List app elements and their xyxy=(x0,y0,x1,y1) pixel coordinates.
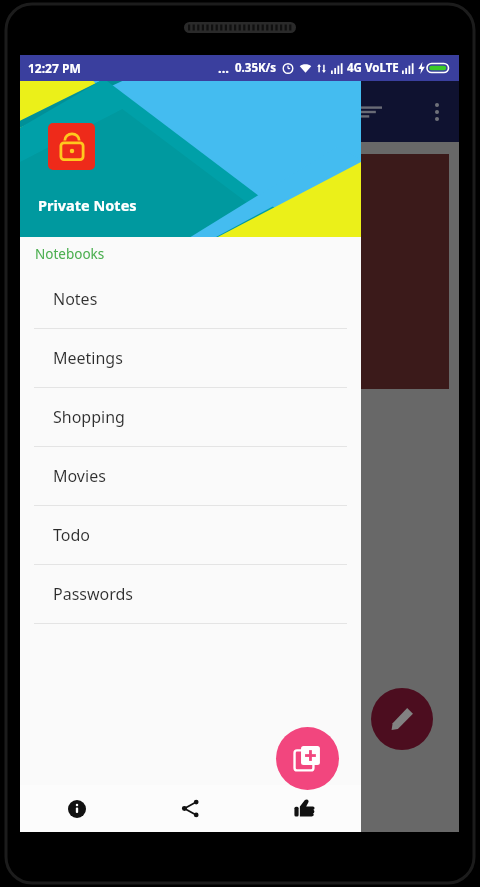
button[interactable]: More options xyxy=(429,97,445,127)
staticText: Meetings xyxy=(53,347,123,369)
button[interactable]: Todo xyxy=(20,506,361,565)
staticText: ... xyxy=(218,59,229,77)
other: Sort xyxy=(360,101,382,123)
staticText: Movies xyxy=(53,465,106,487)
button[interactable]: Notes xyxy=(20,270,361,329)
button[interactable]: Compose note xyxy=(371,688,433,750)
button[interactable]: Shopping xyxy=(20,388,361,447)
staticText: Passwords xyxy=(53,583,134,605)
button[interactable]: Movies xyxy=(20,447,361,506)
staticText: Shopping xyxy=(53,406,125,428)
staticText: 12:27 PM xyxy=(28,60,81,76)
button[interactable]: Like xyxy=(247,785,361,832)
staticText: Notes xyxy=(53,288,98,310)
staticText: 4G xyxy=(347,60,362,76)
staticText: 12:09:40 PM xyxy=(32,366,113,385)
button[interactable]: Share xyxy=(133,785,247,832)
staticText: Notebooks xyxy=(35,245,105,263)
staticText: Todo xyxy=(53,524,90,546)
button[interactable]: Add notebook xyxy=(276,727,339,790)
staticText: Private Notes xyxy=(38,195,137,215)
staticText: VoLTE xyxy=(365,60,399,76)
button[interactable]: Info xyxy=(20,785,133,832)
staticText: 0.35K/s xyxy=(235,60,277,76)
button[interactable]: Passwords xyxy=(20,565,361,624)
button[interactable]: Meetings xyxy=(20,329,361,388)
